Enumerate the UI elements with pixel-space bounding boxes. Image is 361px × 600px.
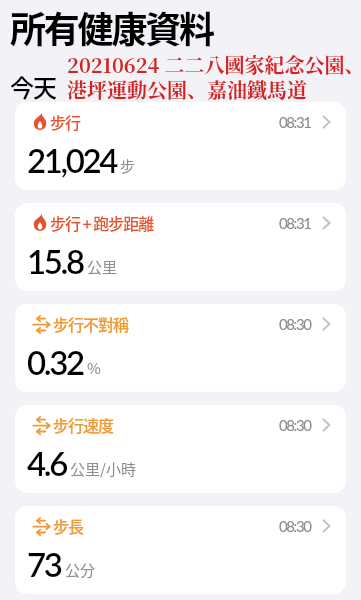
staticText: 21,024 <box>27 140 116 180</box>
staticText: 4.6 <box>27 443 66 483</box>
staticText: 08:30 <box>279 315 311 333</box>
staticText: 公里 <box>87 256 118 278</box>
staticText: % <box>87 357 101 379</box>
staticText: 步行 + 跑步距離 <box>50 211 154 234</box>
staticText: 步 <box>120 155 136 177</box>
button[interactable]: 步行 <box>15 102 346 190</box>
staticText: 08:31 <box>279 214 311 232</box>
staticText: 15.8 <box>27 241 83 281</box>
staticText: 公分 <box>65 559 96 581</box>
staticText: 步長 <box>53 514 84 537</box>
button[interactable]: 步行 + 跑步距離 <box>15 203 346 291</box>
staticText: 今天 <box>10 69 56 104</box>
button[interactable]: 步長 <box>15 506 346 594</box>
staticText: 所有健康資料 <box>10 1 213 53</box>
staticText: 20210624 二二八國家紀念公園、 港坪運動公園、嘉油鐵馬道 <box>67 50 361 104</box>
staticText: 步行速度 <box>53 413 114 436</box>
staticText: 08:30 <box>279 517 311 535</box>
staticText: 步行 <box>50 110 81 133</box>
staticText: 步行不對稱 <box>53 312 129 335</box>
staticText: 0.32 <box>27 342 83 382</box>
staticText: 08:31 <box>279 113 311 131</box>
staticText: 08:30 <box>279 416 311 434</box>
staticText: 73 <box>27 544 61 584</box>
button[interactable]: 步行速度 <box>15 405 346 493</box>
button[interactable]: 步行不對稱 <box>15 304 346 392</box>
staticText: 公里/小時 <box>70 458 136 480</box>
